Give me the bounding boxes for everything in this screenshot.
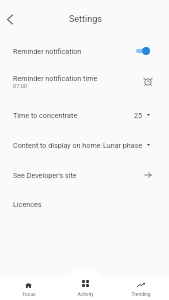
staticText: Reminder notification — [13, 47, 82, 55]
button[interactable]: Activity — [57, 269, 113, 300]
staticText: Settings — [69, 14, 102, 25]
button[interactable]: Reminder notification time — [0, 64, 169, 99]
staticText: Focus — [22, 291, 36, 297]
staticText: Licences — [13, 200, 42, 208]
staticText: See Developer's site — [13, 171, 77, 179]
staticText: Trending — [131, 291, 151, 297]
button[interactable]: Content to display on home — [0, 130, 169, 160]
button[interactable]: Focus — [0, 269, 57, 300]
staticText: Reminder notification time — [13, 74, 98, 82]
staticText: Activity — [77, 291, 94, 297]
staticText: Lunar phase — [103, 141, 143, 149]
button[interactable]: Trending — [113, 269, 169, 300]
staticText: Time to concentrate — [13, 111, 78, 119]
button[interactable]: Reminder notification — [0, 34, 169, 67]
staticText: Content to display on home — [13, 141, 101, 149]
staticText: 25 — [134, 111, 143, 119]
button[interactable]: Back — [2, 11, 18, 27]
button[interactable]: Time to concentrate — [0, 100, 169, 130]
button[interactable]: Licences — [0, 189, 169, 219]
staticText: 07:00 — [13, 83, 27, 90]
button[interactable]: See Developer's site — [0, 160, 169, 189]
